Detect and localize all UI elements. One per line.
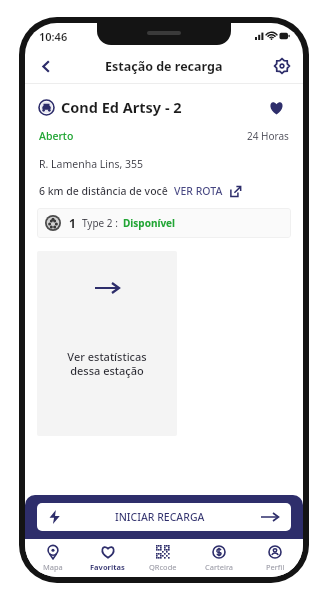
button[interactable]: 1 [37,208,291,238]
button[interactable]: Settings [269,53,295,79]
staticText: Estação de recarga [105,58,223,75]
staticText: 10:46 [39,29,68,44]
button[interactable]: Favoritas [80,539,135,577]
staticText: 24 Horas [247,129,289,143]
staticText: R. Lamenha Lins, 355 [39,157,144,171]
staticText: 6 km de distância de você [39,184,168,198]
staticText: Perfil [266,562,285,572]
button[interactable]: Ver estatísticas dessa estação [37,251,177,436]
button[interactable]: Favorite [263,94,289,120]
staticText: Disponível [123,216,176,230]
button[interactable]: Back [31,51,61,81]
button[interactable]: VER ROTA [174,184,241,198]
staticText: VER ROTA [174,184,223,198]
staticText: Aberto [39,129,74,143]
staticText: Mapa [43,562,63,572]
button[interactable]: Carteira [191,539,247,577]
staticText: Favoritas [90,562,125,572]
staticText: Cond Ed Artsy - 2 [61,97,182,117]
staticText: INICIAR RECARGA [115,510,205,524]
staticText: Ver estatísticas dessa estação [67,349,147,378]
staticText: QRcode [149,562,177,572]
staticText: 1 [69,215,76,231]
button[interactable]: QRcode [135,539,191,577]
staticText: Type 2 : [82,216,118,230]
button[interactable]: INICIAR RECARGA [37,503,291,531]
button[interactable]: Mapa [25,539,80,577]
staticText: Carteira [205,562,234,572]
button[interactable]: Perfil [247,539,303,577]
